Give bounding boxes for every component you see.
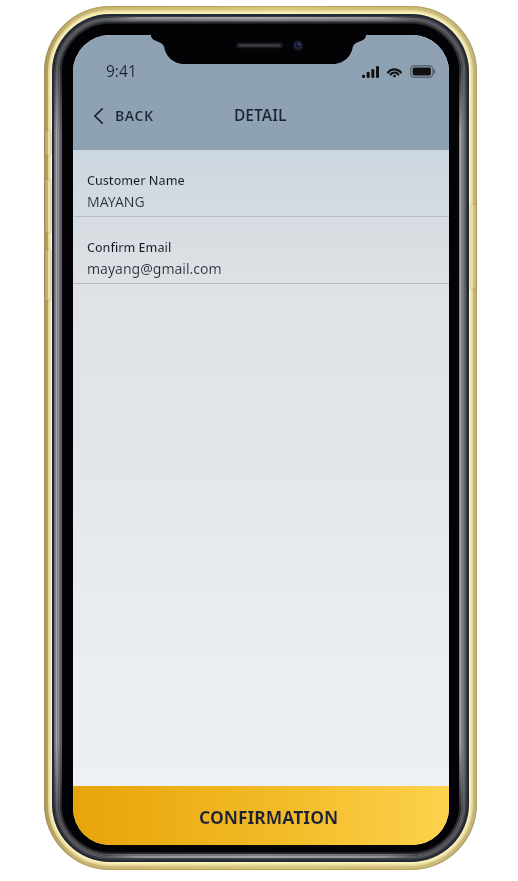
staticText: 9:41 xyxy=(106,60,137,81)
button[interactable]: BACK xyxy=(85,98,163,133)
staticText: DETAIL xyxy=(234,104,287,125)
button[interactable]: Confirm Email xyxy=(73,217,449,284)
button[interactable]: Customer Name xyxy=(73,150,449,217)
button[interactable]: CONFIRMATION xyxy=(73,786,449,845)
staticText: Confirm Email xyxy=(87,239,172,256)
staticText: BACK xyxy=(115,106,154,125)
staticText: MAYANG xyxy=(87,192,145,211)
staticText: mayang@gmail.com xyxy=(87,259,222,278)
staticText: Customer Name xyxy=(87,172,185,189)
staticText: CONFIRMATION xyxy=(199,805,339,829)
